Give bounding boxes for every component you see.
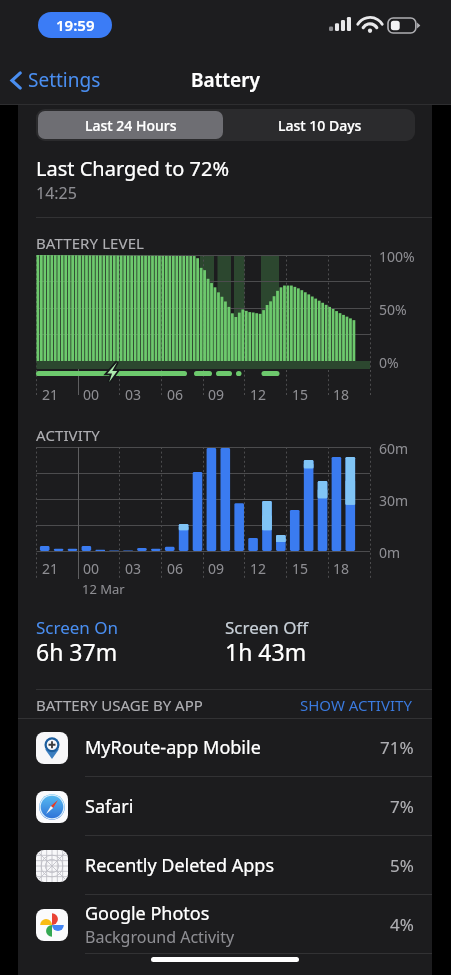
staticText: 100% <box>379 247 415 266</box>
staticText: Settings <box>28 67 101 93</box>
staticText: Screen Off <box>225 616 309 639</box>
staticText: 14:25 <box>36 182 77 204</box>
staticText: 5% <box>390 854 414 877</box>
staticText: 03 <box>125 385 142 404</box>
staticText: SHOW ACTIVITY <box>300 695 412 715</box>
staticText: 15 <box>292 385 309 404</box>
staticText: BATTERY LEVEL <box>36 233 145 253</box>
staticText: 03 <box>125 559 142 578</box>
staticText: 12 <box>250 559 267 578</box>
staticText: Last Charged to 72% <box>36 155 230 182</box>
button[interactable]: Last 24 Hours <box>38 111 223 139</box>
staticText: 06 <box>167 385 184 404</box>
staticText: BATTERY USAGE BY APP <box>36 695 203 715</box>
button[interactable]: SHOW ACTIVITY <box>294 690 418 720</box>
staticText: 71% <box>380 736 414 759</box>
staticText: 19:59 <box>56 15 95 35</box>
staticText: 12 <box>250 385 267 404</box>
staticText: MyRoute-app Mobile <box>85 735 261 760</box>
staticText: 60m <box>379 439 409 458</box>
staticText: ACTIVITY <box>36 425 100 445</box>
button[interactable]: Google Photos <box>18 895 432 954</box>
staticText: 18 <box>333 559 350 578</box>
button[interactable]: Recently Deleted Apps <box>18 836 432 895</box>
staticText: 18 <box>333 385 350 404</box>
staticText: 6h 37m <box>36 636 118 667</box>
staticText: 06 <box>167 559 184 578</box>
staticText: 50% <box>379 300 407 319</box>
staticText: Recently Deleted Apps <box>85 853 275 878</box>
staticText: 4% <box>390 913 414 936</box>
button[interactable]: Last 10 Days <box>225 109 415 141</box>
staticText: 30m <box>379 491 409 510</box>
staticText: Screen On <box>36 616 119 639</box>
button[interactable]: Settings <box>6 65 105 95</box>
staticText: Battery <box>191 67 260 93</box>
button[interactable]: Recording indicator <box>38 12 112 38</box>
staticText: 15 <box>292 559 309 578</box>
button[interactable]: MyRoute-app Mobile <box>18 718 432 777</box>
staticText: 1h 43m <box>225 636 307 667</box>
staticText: 21 <box>42 385 59 404</box>
staticText: 0m <box>379 543 401 562</box>
staticText: 00 <box>83 385 100 404</box>
staticText: Last 10 Days <box>278 116 362 135</box>
staticText: 0% <box>379 353 399 372</box>
staticText: 21 <box>42 559 59 578</box>
staticText: Last 24 Hours <box>85 116 177 135</box>
staticText: Background Activity <box>85 926 235 948</box>
staticText: 00 <box>83 559 100 578</box>
staticText: Safari <box>85 794 134 819</box>
staticText: 09 <box>208 559 225 578</box>
staticText: 12 Mar <box>82 580 125 598</box>
staticText: 7% <box>390 795 414 818</box>
button[interactable]: Safari <box>18 777 432 836</box>
staticText: 09 <box>208 385 225 404</box>
staticText: Google Photos <box>85 901 210 926</box>
